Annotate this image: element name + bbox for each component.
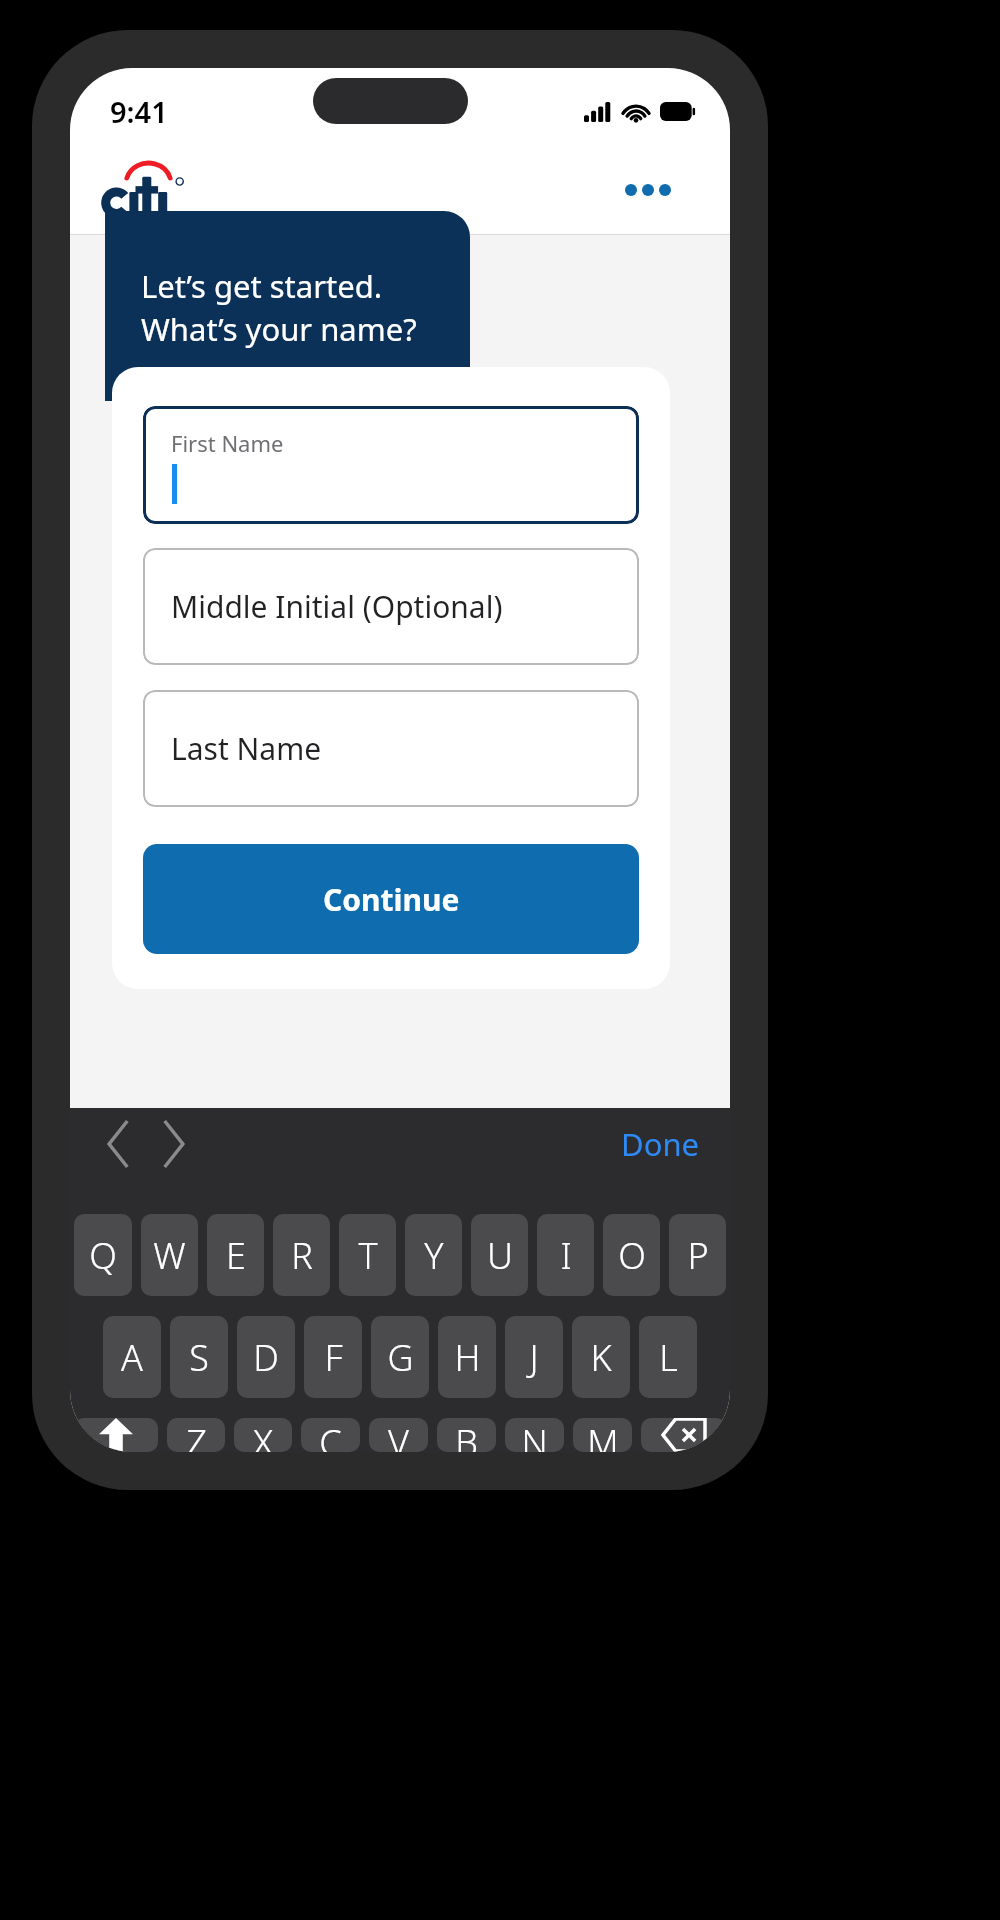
button[interactable]: Citi home [104, 162, 190, 218]
staticText: M [587, 1418, 619, 1452]
button[interactable]: X [234, 1418, 292, 1452]
staticText: X [253, 1418, 273, 1452]
button[interactable]: T [339, 1214, 396, 1296]
button[interactable]: A [103, 1316, 161, 1398]
button[interactable]: Continue [143, 844, 639, 954]
button[interactable]: Last Name [143, 690, 639, 807]
staticText: D [253, 1333, 279, 1382]
staticText: A [121, 1333, 143, 1382]
staticText: G [387, 1333, 414, 1382]
staticText: V [388, 1418, 409, 1452]
button[interactable]: Middle Initial (Optional) [143, 548, 639, 665]
button[interactable]: U [471, 1214, 528, 1296]
staticText: W [153, 1231, 186, 1280]
button[interactable]: M [573, 1418, 632, 1452]
staticText: Z [186, 1418, 207, 1452]
button[interactable]: Y [405, 1214, 462, 1296]
button[interactable]: Done [609, 1115, 712, 1173]
staticText: E [226, 1231, 246, 1280]
staticText: B [455, 1418, 478, 1452]
button[interactable]: B [437, 1418, 496, 1452]
staticText: S [189, 1333, 209, 1382]
staticText: T [358, 1231, 378, 1280]
staticText: Continue [323, 879, 460, 920]
button[interactable]: G [371, 1316, 429, 1398]
button[interactable]: K [572, 1316, 630, 1398]
button[interactable]: N [505, 1418, 564, 1452]
button[interactable]: S [170, 1316, 228, 1398]
staticText: K [590, 1333, 612, 1382]
staticText: N [521, 1418, 548, 1452]
button[interactable]: J [505, 1316, 563, 1398]
button[interactable]: H [438, 1316, 496, 1398]
staticText: C [319, 1418, 342, 1452]
staticText: R [291, 1231, 313, 1280]
button[interactable]: W [141, 1214, 198, 1296]
button[interactable]: O [603, 1214, 660, 1296]
button[interactable]: R [273, 1214, 330, 1296]
staticText: Done [621, 1123, 700, 1165]
staticText: O [618, 1231, 646, 1280]
staticText: U [487, 1231, 513, 1280]
button[interactable]: P [669, 1214, 726, 1296]
button[interactable]: First Name [143, 406, 639, 524]
staticText: Middle Initial (Optional) [171, 586, 503, 627]
button[interactable]: Next field [146, 1117, 200, 1171]
button[interactable]: More options [618, 166, 678, 214]
staticText: First Name [171, 428, 284, 458]
button[interactable]: I [537, 1214, 594, 1296]
staticText: L [659, 1333, 678, 1382]
button[interactable]: E [207, 1214, 264, 1296]
staticText: Let’s get started. What’s your name? [141, 265, 444, 350]
button[interactable]: F [304, 1316, 362, 1398]
button[interactable]: D [237, 1316, 295, 1398]
button[interactable]: Backspace [641, 1418, 726, 1452]
button[interactable]: C [301, 1418, 360, 1452]
staticText: Y [424, 1231, 444, 1280]
staticText: P [687, 1231, 709, 1280]
staticText: J [529, 1333, 539, 1382]
button[interactable]: Z [167, 1418, 225, 1452]
button[interactable]: Shift [74, 1418, 158, 1452]
staticText: Last Name [171, 728, 322, 769]
staticText: H [454, 1333, 481, 1382]
button[interactable]: Q [74, 1214, 132, 1296]
staticText: Q [89, 1231, 117, 1280]
button[interactable]: L [639, 1316, 697, 1398]
staticText: 9:41 [110, 92, 168, 131]
button[interactable]: Previous field [92, 1117, 146, 1171]
button[interactable]: V [369, 1418, 428, 1452]
staticText: I [560, 1231, 572, 1280]
staticText: F [324, 1333, 343, 1382]
